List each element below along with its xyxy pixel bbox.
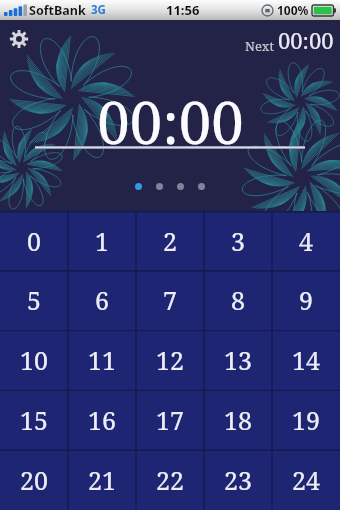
staticText: 22	[156, 463, 184, 497]
button[interactable]: 1	[68, 211, 136, 270]
staticText: Next	[245, 37, 274, 55]
staticText: 00:00	[278, 25, 334, 55]
button[interactable]: 18	[204, 390, 272, 450]
staticText: 13	[224, 343, 252, 377]
button[interactable]: Page 3	[177, 183, 184, 190]
staticText: 3G	[91, 2, 106, 18]
staticText: 23	[224, 463, 252, 497]
button[interactable]: 24	[272, 450, 340, 510]
button[interactable]: 16	[68, 390, 136, 450]
button[interactable]: 9	[272, 270, 340, 330]
staticText: 00:00	[97, 82, 244, 161]
button[interactable]: Settings	[4, 24, 34, 54]
staticText: SoftBank	[29, 2, 86, 19]
staticText: 3	[231, 224, 245, 258]
staticText: 1	[95, 224, 109, 258]
button[interactable]: 2	[136, 211, 204, 270]
button[interactable]: Next	[245, 25, 334, 55]
button[interactable]: 5	[0, 270, 68, 330]
button[interactable]: 10	[0, 330, 68, 390]
button[interactable]: 13	[204, 330, 272, 390]
staticText: 11	[88, 343, 116, 377]
button[interactable]: 3	[204, 211, 272, 270]
button[interactable]: Page 2	[156, 183, 163, 190]
staticText: 4	[299, 224, 313, 258]
staticText: 14	[292, 343, 320, 377]
staticText: 11:56	[166, 1, 200, 19]
button[interactable]: 7	[136, 270, 204, 330]
staticText: 16	[88, 403, 116, 437]
staticText: 10	[20, 343, 48, 377]
staticText: 21	[88, 463, 116, 497]
button[interactable]: 21	[68, 450, 136, 510]
button[interactable]: Page 1	[135, 183, 142, 190]
staticText: 5	[27, 283, 41, 317]
button[interactable]: 12	[136, 330, 204, 390]
button[interactable]: 0	[0, 211, 68, 270]
staticText: 2	[163, 224, 177, 258]
button[interactable]: Page 4	[198, 183, 205, 190]
staticText: 0	[27, 224, 41, 258]
button[interactable]: 6	[68, 270, 136, 330]
button[interactable]: 15	[0, 390, 68, 450]
staticText: 7	[163, 283, 177, 317]
button[interactable]: 11	[68, 330, 136, 390]
button[interactable]: 17	[136, 390, 204, 450]
staticText: 24	[292, 463, 320, 497]
button[interactable]: 23	[204, 450, 272, 510]
button[interactable]: 19	[272, 390, 340, 450]
staticText: 8	[231, 283, 245, 317]
button[interactable]: 20	[0, 450, 68, 510]
staticText: 19	[292, 403, 320, 437]
staticText: 6	[95, 283, 109, 317]
button[interactable]: 4	[272, 211, 340, 270]
staticText: 100%	[277, 2, 309, 18]
staticText: 18	[224, 403, 252, 437]
staticText: 12	[156, 343, 184, 377]
button[interactable]: 8	[204, 270, 272, 330]
staticText: 17	[156, 403, 184, 437]
staticText: 20	[20, 463, 48, 497]
staticText: 9	[299, 283, 313, 317]
button[interactable]: 22	[136, 450, 204, 510]
staticText: 15	[20, 403, 48, 437]
button[interactable]: 14	[272, 330, 340, 390]
